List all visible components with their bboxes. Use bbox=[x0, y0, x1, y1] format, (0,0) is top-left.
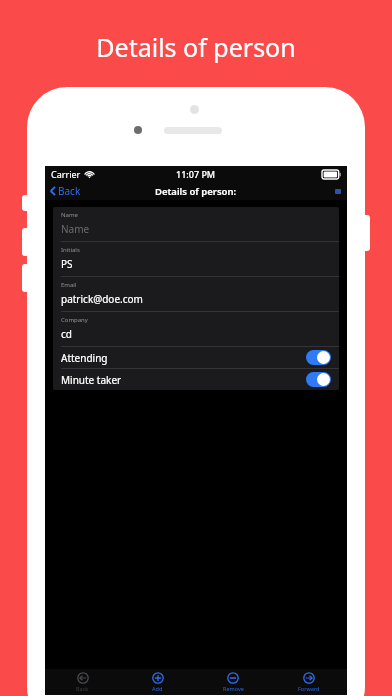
button[interactable]: Attending bbox=[53, 347, 339, 368]
staticText: Attending bbox=[61, 351, 108, 365]
button[interactable]: More options bbox=[335, 189, 347, 194]
button[interactable]: Forward bbox=[271, 669, 347, 695]
staticText: Details of person: bbox=[155, 185, 237, 198]
button[interactable]: Minute taker bbox=[53, 369, 339, 390]
button[interactable]: Back bbox=[45, 182, 86, 200]
staticText: cd bbox=[61, 327, 72, 341]
staticText: Details of person bbox=[96, 30, 296, 64]
staticText: Add bbox=[152, 685, 163, 692]
staticText: Name bbox=[61, 222, 90, 236]
button[interactable]: Name bbox=[53, 207, 339, 241]
staticText: patrick@doe.com bbox=[61, 292, 143, 306]
staticText: Back bbox=[58, 184, 81, 198]
staticText: Carrier bbox=[51, 168, 81, 180]
button[interactable]: Remove bbox=[195, 669, 271, 695]
staticText: PS bbox=[61, 257, 73, 271]
staticText: Forward bbox=[298, 685, 320, 692]
staticText: Email bbox=[61, 281, 77, 289]
button[interactable]: Back bbox=[45, 669, 120, 695]
button[interactable]: Email bbox=[53, 277, 339, 311]
button[interactable]: Initials bbox=[53, 242, 339, 276]
button[interactable]: Add bbox=[120, 669, 195, 695]
staticText: Back bbox=[76, 685, 89, 692]
staticText: Name bbox=[61, 211, 78, 219]
staticText: 11:07 PM bbox=[176, 168, 216, 180]
staticText: Initials bbox=[61, 246, 80, 254]
button[interactable]: Company bbox=[53, 312, 339, 346]
staticText: Remove bbox=[223, 685, 244, 692]
staticText: Minute taker bbox=[61, 373, 122, 387]
staticText: Company bbox=[61, 316, 88, 324]
